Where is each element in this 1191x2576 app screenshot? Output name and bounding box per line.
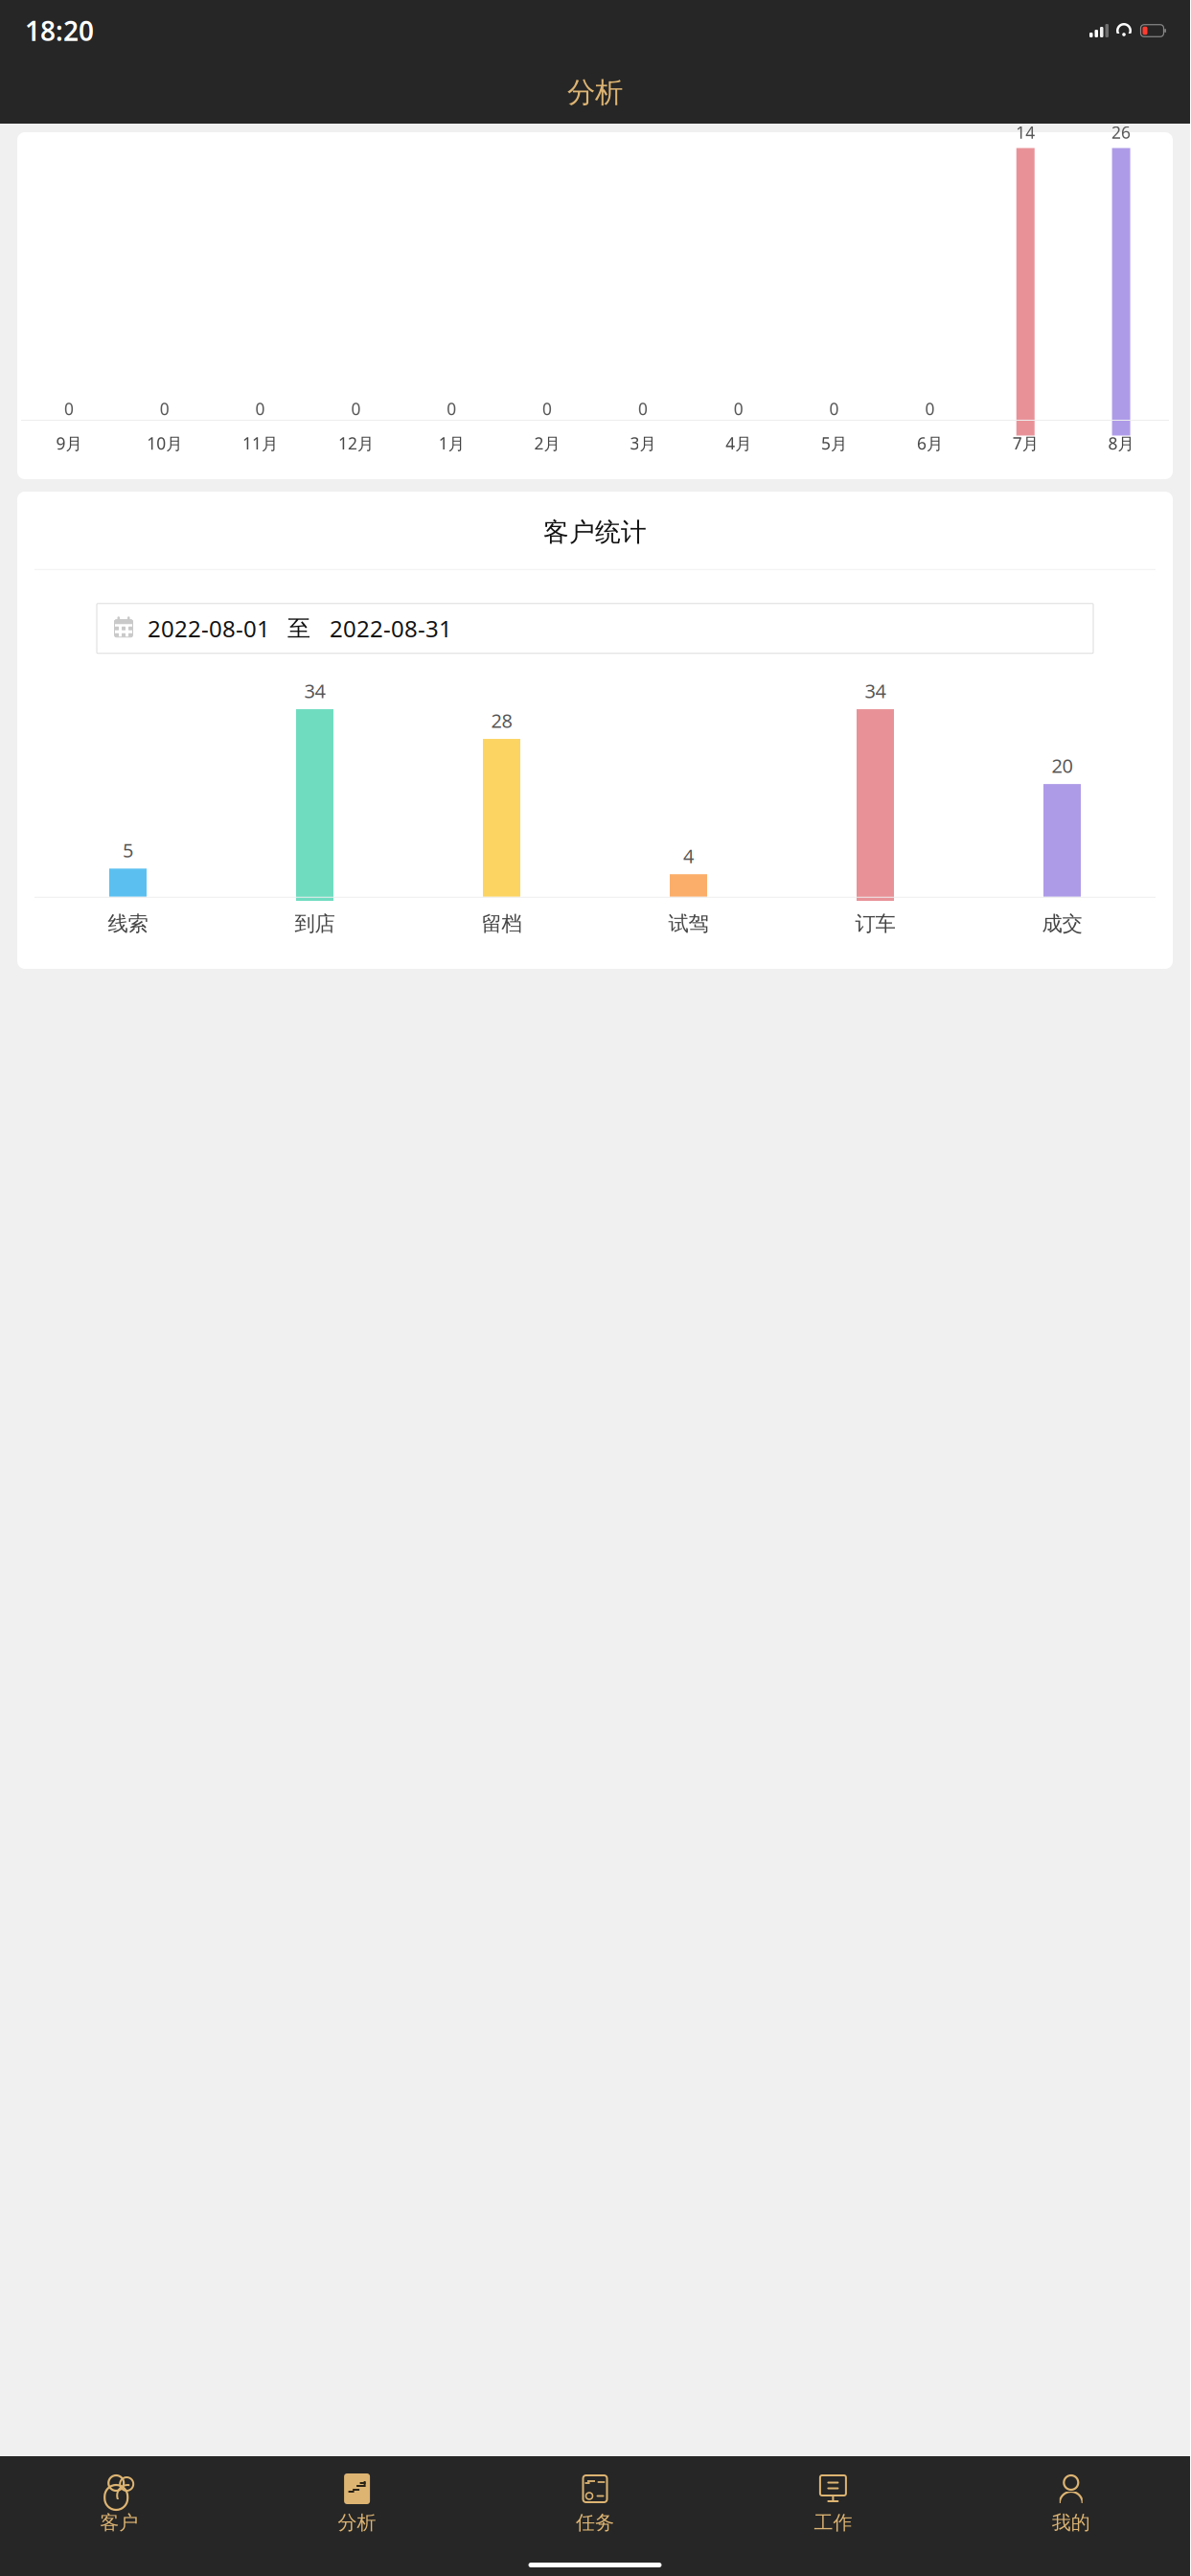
staticText: 我的	[1052, 2511, 1090, 2534]
staticText: 12月	[338, 432, 374, 454]
staticText: 14	[1016, 121, 1035, 143]
staticText: 留档	[481, 911, 522, 936]
staticText: 0	[351, 398, 361, 420]
staticText: 8月	[1108, 432, 1134, 454]
staticText: 4月	[726, 432, 751, 454]
staticText: 工作	[814, 2511, 852, 2534]
staticText: 到店	[295, 911, 335, 936]
staticText: 0	[255, 398, 265, 420]
button[interactable]: 任务	[476, 2466, 714, 2540]
staticText: 0	[638, 398, 648, 420]
button[interactable]: 分析	[0, 61, 1190, 124]
staticText: 2022-08-01	[148, 613, 270, 644]
staticText: 0	[925, 398, 935, 420]
staticText: 26	[1112, 121, 1131, 143]
staticText: 任务	[576, 2511, 614, 2534]
staticText: 分析	[338, 2511, 376, 2534]
staticText: 试驾	[668, 911, 709, 936]
staticText: 11月	[243, 432, 278, 454]
staticText: 0	[64, 398, 74, 420]
button[interactable]: 2022-08-01	[17, 604, 1173, 653]
staticText: 2022-08-31	[330, 613, 452, 644]
staticText: 4	[683, 843, 694, 869]
button[interactable]: 分析	[238, 2466, 476, 2540]
staticText: 34	[304, 678, 325, 704]
staticText: 9月	[56, 432, 82, 454]
staticText: 7月	[1013, 432, 1038, 454]
button[interactable]: 我的	[952, 2466, 1190, 2540]
staticText: 订车	[855, 911, 895, 936]
staticText: 线索	[108, 911, 148, 936]
staticText: 20	[1052, 753, 1073, 778]
staticText: 6月	[917, 432, 943, 454]
staticText: 34	[865, 678, 886, 704]
staticText: 成交	[1042, 911, 1082, 936]
staticText: 3月	[630, 432, 656, 454]
staticText: 2月	[534, 432, 560, 454]
staticText: 客户统计	[543, 517, 647, 548]
staticText: 0	[160, 398, 169, 420]
staticText: 0	[447, 398, 456, 420]
staticText: 18:20	[25, 13, 94, 48]
staticText: 至	[287, 614, 310, 643]
button[interactable]: 工作	[714, 2466, 952, 2540]
staticText: 5	[123, 837, 133, 863]
staticText: 5月	[821, 432, 847, 454]
staticText: 1月	[439, 432, 465, 454]
button[interactable]: 客户	[0, 2466, 238, 2540]
staticText: 10月	[147, 432, 182, 454]
staticText: 28	[491, 708, 512, 733]
staticText: 客户	[100, 2511, 138, 2534]
staticText: 分析	[567, 75, 623, 110]
staticText: 0	[829, 398, 839, 420]
staticText: 0	[542, 398, 552, 420]
staticText: 0	[734, 398, 743, 420]
